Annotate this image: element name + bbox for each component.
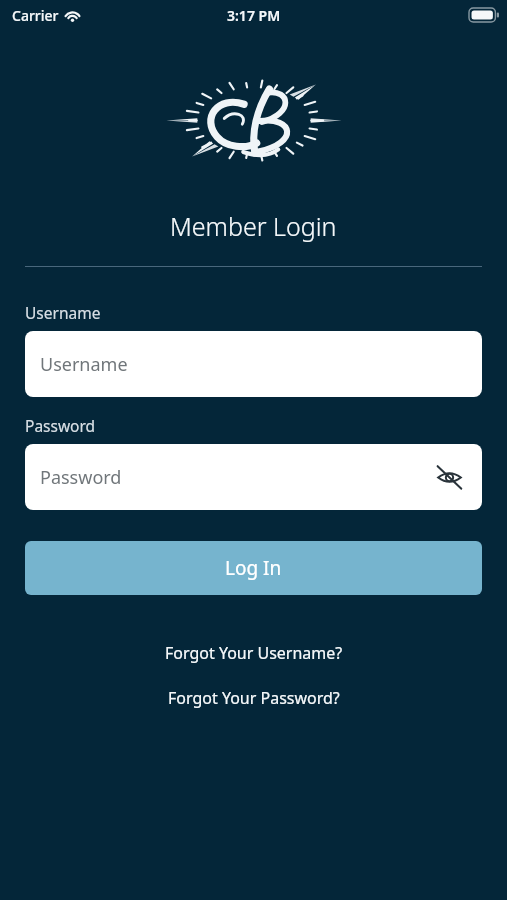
button[interactable]: Password	[25, 444, 482, 510]
staticText: Carrier	[12, 6, 59, 25]
button[interactable]: Log In	[25, 541, 482, 595]
staticText: Username	[25, 302, 101, 323]
staticText: Password	[25, 415, 96, 436]
staticText: Forgot Your Username?	[165, 642, 343, 664]
button[interactable]: Username	[25, 331, 482, 397]
staticText: Member Login	[170, 209, 337, 243]
button[interactable]: Show password	[431, 459, 467, 495]
button[interactable]: Forgot Your Password?	[158, 684, 350, 712]
staticText: Log In	[225, 555, 282, 581]
staticText: 3:17 PM	[227, 6, 281, 25]
staticText: Forgot Your Password?	[168, 687, 340, 709]
staticText: Username	[40, 352, 128, 377]
staticText: Password	[40, 465, 122, 490]
button[interactable]: Forgot Your Username?	[155, 639, 353, 667]
